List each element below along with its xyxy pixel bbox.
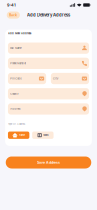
button[interactable]: Save Address bbox=[6, 156, 91, 168]
staticText: 9:41 bbox=[7, 3, 16, 7]
button[interactable]: Phone Number bbox=[8, 58, 89, 69]
staticText: Full Name bbox=[10, 47, 21, 50]
staticText: Address bbox=[10, 107, 20, 110]
staticText: Country bbox=[10, 92, 18, 95]
button[interactable]: City bbox=[51, 73, 89, 84]
staticText: Back bbox=[9, 13, 17, 17]
button[interactable]: Back bbox=[7, 11, 20, 19]
button[interactable]: Country bbox=[8, 88, 89, 99]
staticText: Pin Code bbox=[10, 77, 21, 80]
staticText: Phone Number bbox=[10, 62, 26, 65]
button[interactable]: Full Name bbox=[8, 42, 89, 54]
staticText: Add New Address bbox=[8, 32, 31, 35]
button[interactable]: Pin Code bbox=[8, 73, 46, 84]
button[interactable]: Work bbox=[32, 131, 53, 139]
button[interactable]: Home bbox=[8, 131, 29, 139]
staticText: Save Address bbox=[37, 160, 60, 165]
staticText: Home bbox=[19, 134, 25, 136]
staticText: Work bbox=[43, 134, 48, 136]
staticText: Type Of Address bbox=[8, 123, 25, 125]
staticText: City bbox=[53, 77, 58, 80]
staticText: Add Delivery Address bbox=[27, 13, 70, 18]
button[interactable]: Address bbox=[8, 103, 89, 115]
